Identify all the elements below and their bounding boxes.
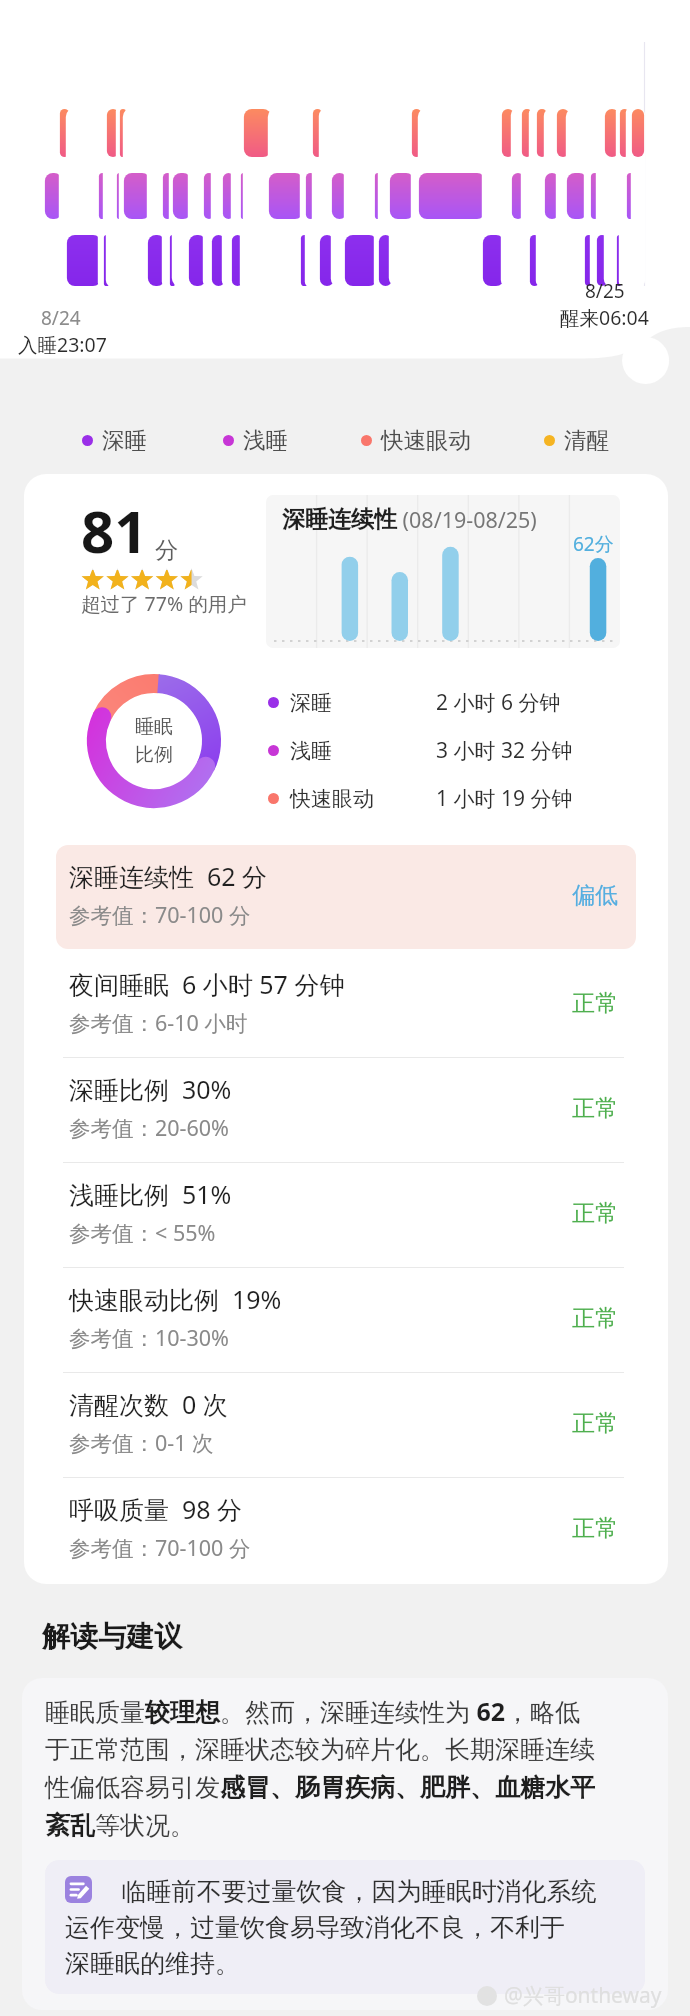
button[interactable]: 夜间睡眠 6 小时 57 分钟 — [56, 953, 636, 1058]
staticText: (08/19-08/25) — [397, 505, 537, 534]
staticText: 浅睡 — [290, 738, 332, 764]
staticText: 清醒 — [564, 426, 609, 454]
staticText: 快速眼动 — [290, 786, 374, 812]
staticText: 2 小时 6 分钟 — [436, 688, 561, 717]
button[interactable]: 浅睡 — [223, 426, 288, 454]
button[interactable]: 呼吸质量 98 分 — [56, 1478, 636, 1583]
staticText: 深睡比例 30% — [69, 1072, 232, 1106]
staticText: 深睡连续性 62 分 — [69, 859, 268, 893]
staticText: 夜间睡眠 6 小时 57 分钟 — [69, 967, 345, 1001]
staticText: 快速眼动比例 19% — [69, 1282, 282, 1316]
staticText: 快速眼动 — [381, 426, 471, 454]
staticText: 超过了 77% 的用户 — [81, 590, 247, 617]
staticText: 清醒次数 0 次 — [69, 1387, 228, 1421]
staticText: 入睡23:07 — [18, 331, 107, 358]
staticText: 睡眠质量较理想。然而，深睡连续性为 62，略低 于正常范围，深睡状态较为碎片化。… — [45, 1694, 595, 1842]
staticText: 浅睡 — [243, 426, 288, 454]
button[interactable]: 深睡比例 30% — [56, 1058, 636, 1163]
staticText: 浅睡比例 51% — [69, 1177, 232, 1211]
staticText: 参考值：70-100 分 — [69, 900, 251, 929]
staticText: 3 小时 32 分钟 — [436, 736, 573, 765]
staticText: @兴哥ontheway — [504, 1981, 662, 2010]
staticText: 睡眠 — [135, 715, 173, 739]
staticText: 呼吸质量 98 分 — [69, 1492, 243, 1526]
staticText: 81 — [81, 491, 148, 570]
staticText: 比例 — [135, 743, 173, 767]
staticText: 深睡 — [290, 690, 332, 716]
staticText: 分 — [155, 536, 178, 565]
button[interactable]: 清醒 — [544, 426, 609, 454]
staticText: 正常 — [572, 1199, 618, 1228]
staticText: 醒来06:04 — [560, 304, 649, 331]
button[interactable]: 清醒次数 0 次 — [56, 1373, 636, 1478]
staticText: 深睡连续性 — [282, 505, 397, 534]
button[interactable]: 深睡 — [82, 426, 147, 454]
button[interactable]: 临睡前不要过量饮食，因为睡眠时消化系统 运作变慢，过量饮食易导致消化不良，不利于… — [65, 1873, 631, 1979]
staticText: 参考值：10-30% — [69, 1323, 229, 1352]
staticText: 参考值：70-100 分 — [69, 1533, 251, 1562]
button[interactable]: 快速眼动 — [361, 426, 471, 454]
staticText: 参考值：0-1 次 — [69, 1428, 214, 1457]
staticText: 正常 — [572, 1094, 618, 1123]
staticText: 正常 — [572, 1304, 618, 1333]
staticText: 深睡 — [102, 426, 147, 454]
staticText: 1 小时 19 分钟 — [436, 784, 573, 813]
staticText: 62分 — [573, 531, 614, 557]
staticText: 8/25 — [585, 278, 625, 304]
staticText: 参考值：< 55% — [69, 1218, 216, 1247]
button[interactable]: 浅睡比例 51% — [56, 1163, 636, 1268]
staticText: 8/24 — [41, 305, 81, 331]
staticText: 解读与建议 — [42, 1619, 182, 1654]
staticText: 偏低 — [572, 881, 618, 910]
button[interactable]: 深睡连续性 62 分 — [56, 845, 636, 953]
staticText: 正常 — [572, 989, 618, 1018]
staticText: 参考值：20-60% — [69, 1113, 229, 1142]
staticText: 参考值：6-10 小时 — [69, 1008, 248, 1037]
other: Tip — [65, 1876, 92, 1900]
staticText: 临睡前不要过量饮食，因为睡眠时消化系统 运作变慢，过量饮食易导致消化不良，不利于… — [65, 1873, 597, 1979]
staticText: 正常 — [572, 1409, 618, 1438]
staticText: 正常 — [572, 1514, 618, 1543]
button[interactable]: 快速眼动比例 19% — [56, 1268, 636, 1373]
button[interactable]: 深睡连续性 — [266, 495, 620, 648]
